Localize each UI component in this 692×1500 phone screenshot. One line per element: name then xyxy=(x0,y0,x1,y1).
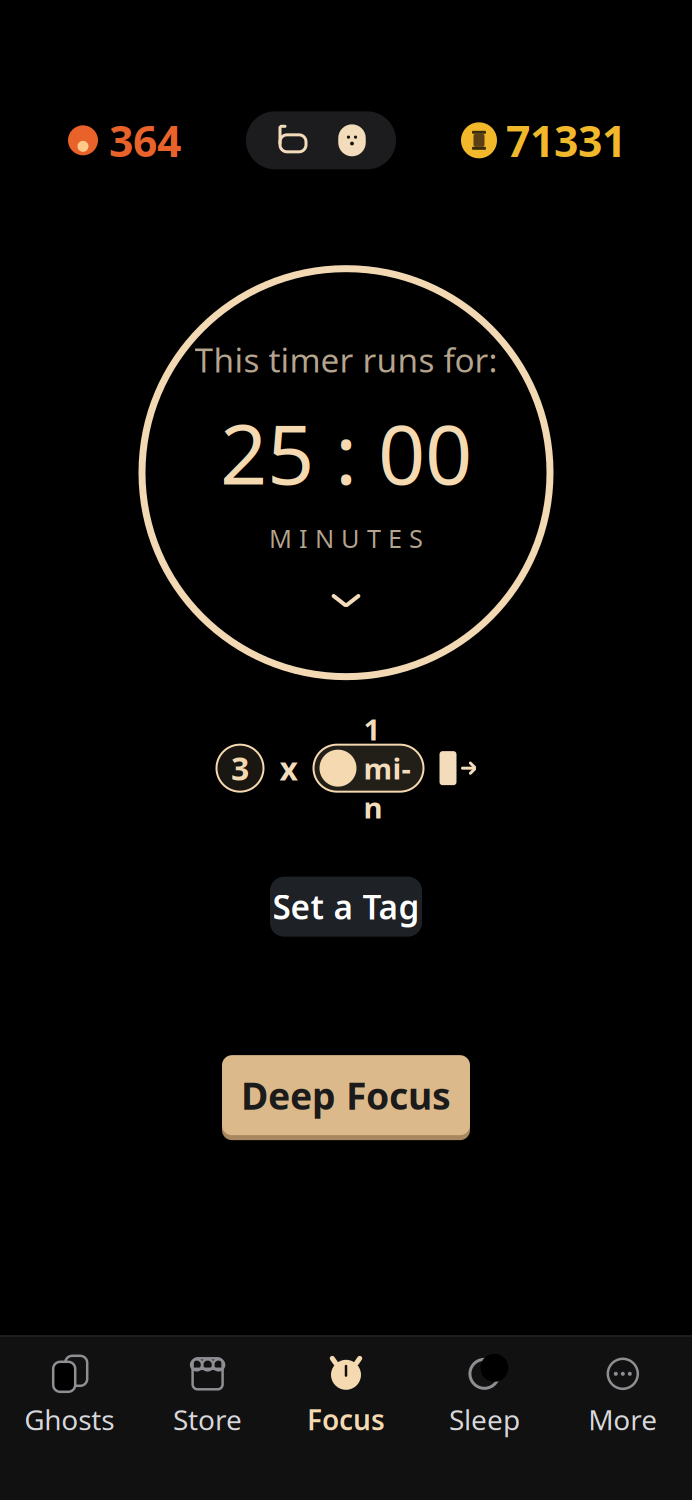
staticText: 3 xyxy=(231,747,249,789)
button[interactable]: Break 1 minute xyxy=(313,745,423,792)
staticText: 71331 xyxy=(506,112,626,169)
staticText: Ghosts xyxy=(24,1401,114,1438)
button[interactable]: Store xyxy=(138,1337,277,1448)
button[interactable]: 71331 coins xyxy=(455,108,632,173)
staticText: Set a Tag xyxy=(272,884,419,929)
staticText: M I N U T E S xyxy=(269,521,423,555)
button[interactable]: Set a Tag xyxy=(270,877,422,937)
button[interactable]: Sleep xyxy=(415,1337,554,1448)
staticText: Deep Focus xyxy=(241,1070,451,1120)
staticText: x xyxy=(279,747,297,789)
button[interactable]: Exit settings xyxy=(423,747,475,789)
button[interactable]: Deep Focus xyxy=(222,1053,470,1138)
staticText: Store xyxy=(173,1401,242,1438)
staticText: 364 xyxy=(109,112,181,169)
button[interactable]: Streak 364 days xyxy=(60,108,187,173)
staticText: 1 min xyxy=(363,710,410,827)
button[interactable]: Modes xyxy=(246,111,396,169)
button[interactable]: Ghosts xyxy=(0,1337,138,1448)
staticText: Focus xyxy=(307,1401,385,1438)
staticText: More xyxy=(588,1401,657,1438)
button[interactable]: 3 rounds xyxy=(216,745,263,792)
button[interactable]: Focus xyxy=(277,1337,415,1448)
staticText: This timer runs for: xyxy=(194,337,497,382)
button[interactable]: More xyxy=(554,1337,692,1448)
staticText: 25 : 00 xyxy=(220,398,472,507)
staticText: Sleep xyxy=(449,1401,520,1438)
button[interactable]: Timer duration 25 minutes xyxy=(142,269,550,677)
